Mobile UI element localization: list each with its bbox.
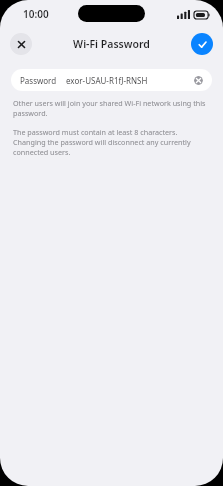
button[interactable]: Password [11, 69, 212, 91]
staticText: The password must contain at least 8 cha… [13, 127, 210, 157]
staticText: 10:00 [23, 7, 49, 21]
staticText: Other users will join your shared Wi-Fi … [13, 98, 210, 118]
staticText: Password [20, 75, 57, 86]
staticText: exor-USAU-R1fJ-RNSH [66, 75, 194, 86]
button[interactable]: Confirm [191, 33, 213, 55]
button[interactable]: Clear text [194, 76, 203, 85]
button[interactable]: Close [10, 33, 32, 55]
staticText: Wi-Fi Password [73, 37, 150, 51]
